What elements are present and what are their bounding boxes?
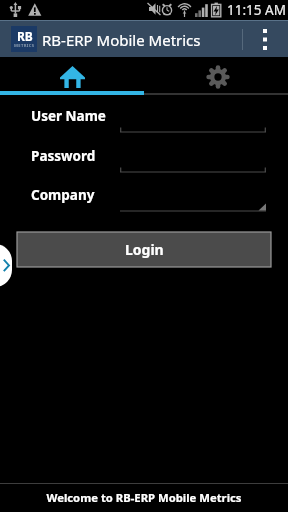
staticText: Password — [31, 147, 96, 165]
staticText: 11:15 AM — [227, 1, 286, 19]
button[interactable]: Password input — [120, 149, 266, 173]
staticText: RB — [17, 28, 33, 44]
button[interactable]: Settings tab — [144, 57, 288, 95]
staticText: Company — [31, 186, 95, 204]
staticText: Welcome to RB-ERP Mobile Metrics — [46, 490, 242, 505]
staticText: User Name — [31, 107, 106, 125]
staticText: RB-ERP Mobile Metrics — [42, 30, 201, 50]
button[interactable]: Login — [17, 232, 271, 267]
button[interactable]: Home tab — [0, 57, 144, 95]
button[interactable]: Company input — [120, 188, 266, 212]
button[interactable]: User Name input — [120, 109, 266, 133]
button[interactable]: Open navigation drawer — [0, 244, 12, 287]
staticText: METRICS — [14, 43, 35, 49]
button[interactable]: More options — [252, 20, 282, 57]
staticText: Login — [125, 240, 164, 259]
